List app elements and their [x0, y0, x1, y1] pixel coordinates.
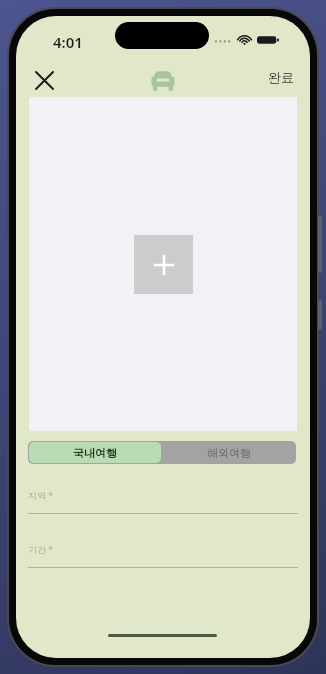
staticText: 기간 *: [28, 543, 54, 555]
staticText: 국내여행: [73, 446, 117, 460]
button[interactable]: 기간 *: [28, 541, 298, 581]
staticText: 완료: [268, 69, 294, 85]
button[interactable]: Close: [24, 60, 64, 100]
staticText: 지역 *: [28, 489, 54, 501]
button[interactable]: 해외여행: [162, 441, 296, 464]
button[interactable]: 국내여행: [29, 442, 161, 463]
staticText: 해외여행: [207, 446, 251, 460]
staticText: 4:01: [53, 32, 83, 52]
button[interactable]: [29, 97, 297, 431]
button[interactable]: 완료: [260, 62, 302, 92]
button[interactable]: 지역 *: [28, 487, 298, 527]
